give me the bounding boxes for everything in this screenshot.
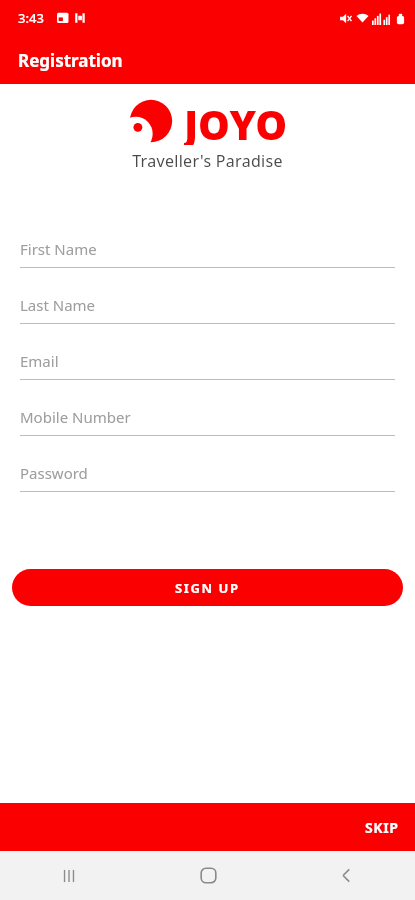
button[interactable]: Password xyxy=(0,450,415,506)
button[interactable]: SKIP xyxy=(349,808,415,847)
staticText: 3:43 xyxy=(18,9,44,27)
button[interactable]: Home xyxy=(180,851,236,900)
staticText: Password xyxy=(20,463,88,483)
staticText: First Name xyxy=(20,239,97,259)
staticText: SKIP xyxy=(365,818,399,837)
button[interactable]: Recent apps xyxy=(41,851,97,900)
button[interactable]: First Name xyxy=(0,226,415,282)
staticText: Traveller's Paradise xyxy=(0,150,415,172)
button[interactable]: SIGN UP xyxy=(12,569,403,606)
staticText: Email xyxy=(20,351,59,371)
staticText: Registration xyxy=(18,49,123,72)
staticText: SIGN UP xyxy=(175,579,240,597)
button[interactable]: Email xyxy=(0,338,415,394)
staticText: Last Name xyxy=(20,295,96,315)
button[interactable]: Last Name xyxy=(0,282,415,338)
button[interactable]: Mobile Number xyxy=(0,394,415,450)
staticText: JOYO xyxy=(184,97,288,145)
staticText: Mobile Number xyxy=(20,407,131,427)
button[interactable]: Back xyxy=(318,851,374,900)
